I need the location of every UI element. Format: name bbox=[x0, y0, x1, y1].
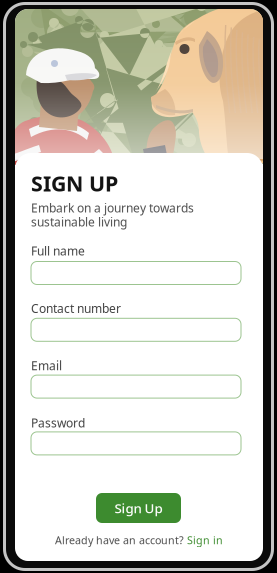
staticText: Email bbox=[31, 358, 62, 373]
button[interactable]: Contact number bbox=[15, 9, 225, 32]
button[interactable]: Full name bbox=[15, 9, 225, 32]
button[interactable]: Email bbox=[15, 9, 225, 32]
button[interactable]: Sign in bbox=[187, 533, 223, 547]
button[interactable]: Sign Up bbox=[96, 493, 181, 523]
staticText: Embark on a journey towards bbox=[31, 200, 194, 216]
staticText: Full name bbox=[31, 243, 85, 259]
button[interactable]: Password bbox=[15, 9, 225, 32]
staticText: SIGN UP bbox=[31, 169, 118, 197]
staticText: Password bbox=[31, 415, 85, 431]
staticText: Sign Up bbox=[114, 499, 162, 517]
staticText: Already have an account? bbox=[55, 533, 187, 547]
staticText: sustainable living bbox=[31, 214, 127, 230]
staticText: Sign in bbox=[187, 533, 223, 547]
staticText: Contact number bbox=[31, 300, 121, 316]
